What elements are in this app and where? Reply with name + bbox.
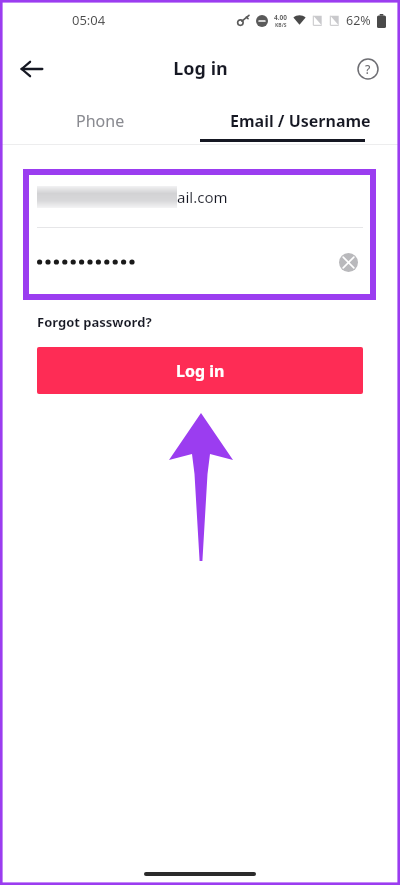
button[interactable]: Clear password [333,247,363,277]
staticText: Phone [76,110,125,132]
button[interactable]: Forgot password? [37,313,152,331]
button[interactable]: Phone [0,97,200,145]
button[interactable]: Clear password [37,247,363,277]
staticText: 05:04 [72,11,106,29]
button[interactable]: ail.com [37,167,363,227]
staticText: ? [365,61,371,77]
staticText: Email / Username [230,110,371,132]
staticText: Log in [176,360,225,382]
staticText: Log in [173,56,228,81]
staticText: 4.00 [274,13,287,22]
staticText: 62% [346,12,371,29]
button[interactable]: Back [10,47,54,91]
button[interactable]: Help [348,49,388,89]
button[interactable]: Email / Username [200,97,400,145]
staticText: KB/S [275,22,287,29]
staticText: ail.com [177,187,228,207]
button[interactable]: Log in [37,347,363,394]
